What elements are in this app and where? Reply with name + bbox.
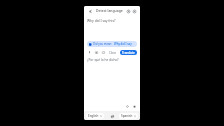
button[interactable]: Account [131, 8, 137, 14]
staticText: Why did I say this [114, 42, 135, 46]
button[interactable]: Camera [94, 50, 99, 55]
button[interactable]: History [125, 8, 131, 14]
staticText: Did you mean: [93, 42, 113, 46]
staticText: English [88, 114, 99, 118]
staticText: Detect language [96, 8, 125, 13]
button[interactable]: Spanish [119, 113, 138, 119]
button[interactable]: Translate [120, 50, 137, 55]
button[interactable]: Microphone [87, 50, 92, 55]
button[interactable]: Handwriting [101, 50, 106, 55]
staticText: Why did I say this? [87, 18, 116, 22]
staticText: Spanish [121, 114, 133, 118]
button[interactable]: Back [87, 8, 93, 14]
button[interactable]: Listen [125, 104, 130, 109]
button[interactable]: Swap languages [109, 113, 115, 119]
staticText: ¿Por qué lo he dicho? [87, 58, 119, 62]
button[interactable]: English [86, 113, 104, 119]
button[interactable]: Did you mean: [87, 41, 137, 47]
staticText: Translate [122, 51, 135, 55]
button[interactable]: Copy [132, 104, 137, 109]
button[interactable]: Clear [108, 50, 118, 56]
